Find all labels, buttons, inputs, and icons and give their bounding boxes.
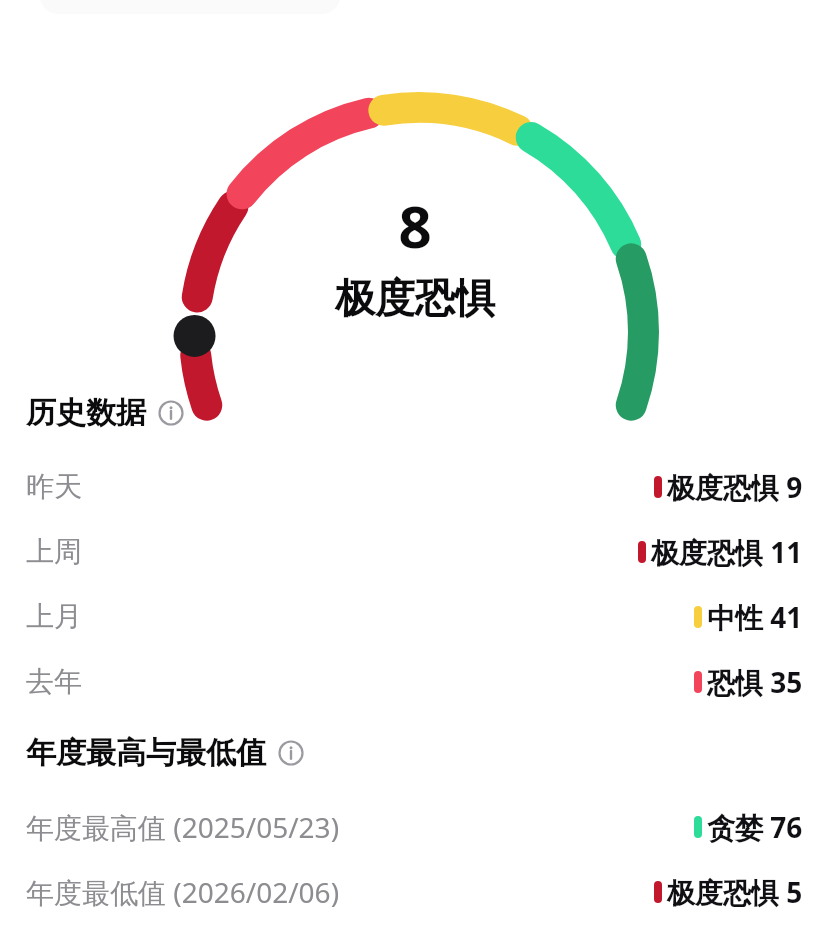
button[interactable]: 去年 [26,649,803,714]
staticText: 去年 [26,664,82,699]
button[interactable]: 上月 [26,584,803,649]
staticText: 极度恐惧 11 [651,533,803,571]
staticText: 贪婪 76 [707,808,803,846]
button[interactable]: 历史数据 [26,394,803,432]
button[interactable]: 年度最高值 (2025/05/23) [26,794,803,859]
staticText: 年度最高值 (2025/05/23) [26,808,340,846]
staticText: 年度最低值 (2026/02/06) [26,873,340,911]
staticText: 极度恐惧 9 [667,468,803,506]
button[interactable]: 昨天 [26,454,803,519]
staticText: 8 [398,186,432,265]
button[interactable]: 年度最高与最低值 [26,734,803,772]
button[interactable]: 历史数据 说明 [158,400,184,426]
staticText: 上周 [26,534,82,569]
staticText: 中性 41 [707,598,803,636]
staticText: 恐惧 35 [707,663,803,701]
staticText: 年度最高与最低值 [26,734,266,772]
staticText: 极度恐惧 [335,273,495,323]
button[interactable]: 年度最低值 (2026/02/06) [26,859,803,924]
button[interactable]: 年度最高与最低值 说明 [278,740,304,766]
staticText: 上月 [26,599,82,634]
button[interactable]: 上周 [26,519,803,584]
staticText: 极度恐惧 5 [667,873,803,911]
staticText: 昨天 [26,469,82,504]
staticText: 历史数据 [26,394,146,432]
